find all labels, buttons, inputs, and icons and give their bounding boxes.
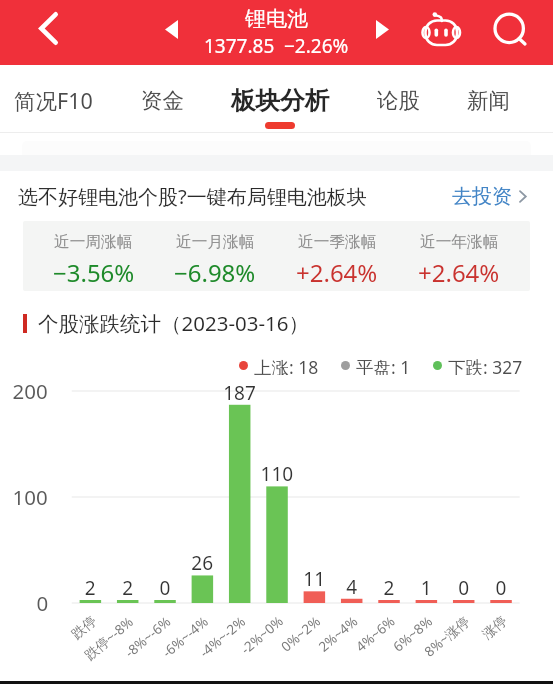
- staticText: −6.98%: [174, 256, 256, 289]
- button[interactable]: 板块分析: [231, 65, 329, 132]
- staticText: 近一季涨幅: [298, 232, 377, 252]
- staticText: 去投资: [452, 184, 512, 209]
- staticText: +2.64%: [418, 256, 500, 289]
- button[interactable]: 新闻: [467, 65, 510, 132]
- staticText: 简况F10: [14, 86, 93, 115]
- button[interactable]: Next sector: [361, 9, 403, 50]
- button[interactable]: 论股: [377, 65, 420, 132]
- staticText: 选不好锂电池个股?一键布局锂电池板块: [18, 183, 367, 210]
- staticText: 近一年涨幅: [420, 232, 499, 252]
- staticText: 近一周涨幅: [54, 232, 133, 252]
- staticText: 锂电池: [245, 6, 308, 32]
- button[interactable]: 资金: [141, 65, 184, 132]
- button[interactable]: Search: [487, 4, 535, 60]
- staticText: 1377.85: [204, 33, 275, 59]
- button[interactable]: Previous sector: [150, 9, 192, 50]
- button[interactable]: 去投资: [452, 184, 527, 209]
- staticText: 平盘: 1: [356, 355, 411, 375]
- staticText: +2.64%: [296, 256, 378, 289]
- staticText: 近一月涨幅: [176, 232, 255, 252]
- staticText: 上涨: 18: [254, 355, 319, 375]
- staticText: 新闻: [467, 87, 510, 114]
- staticText: 论股: [377, 87, 420, 114]
- button[interactable]: 简况F10: [14, 65, 93, 132]
- staticText: 下跌: 327: [448, 355, 523, 375]
- staticText: 资金: [141, 87, 184, 114]
- staticText: 板块分析: [231, 85, 329, 116]
- staticText: 个股涨跌统计（2023-03-16）: [38, 309, 310, 337]
- staticText: −3.56%: [53, 256, 135, 289]
- button[interactable]: AI assistant: [418, 4, 464, 60]
- staticText: −2.26%: [284, 33, 349, 59]
- button[interactable]: Back: [26, 6, 70, 50]
